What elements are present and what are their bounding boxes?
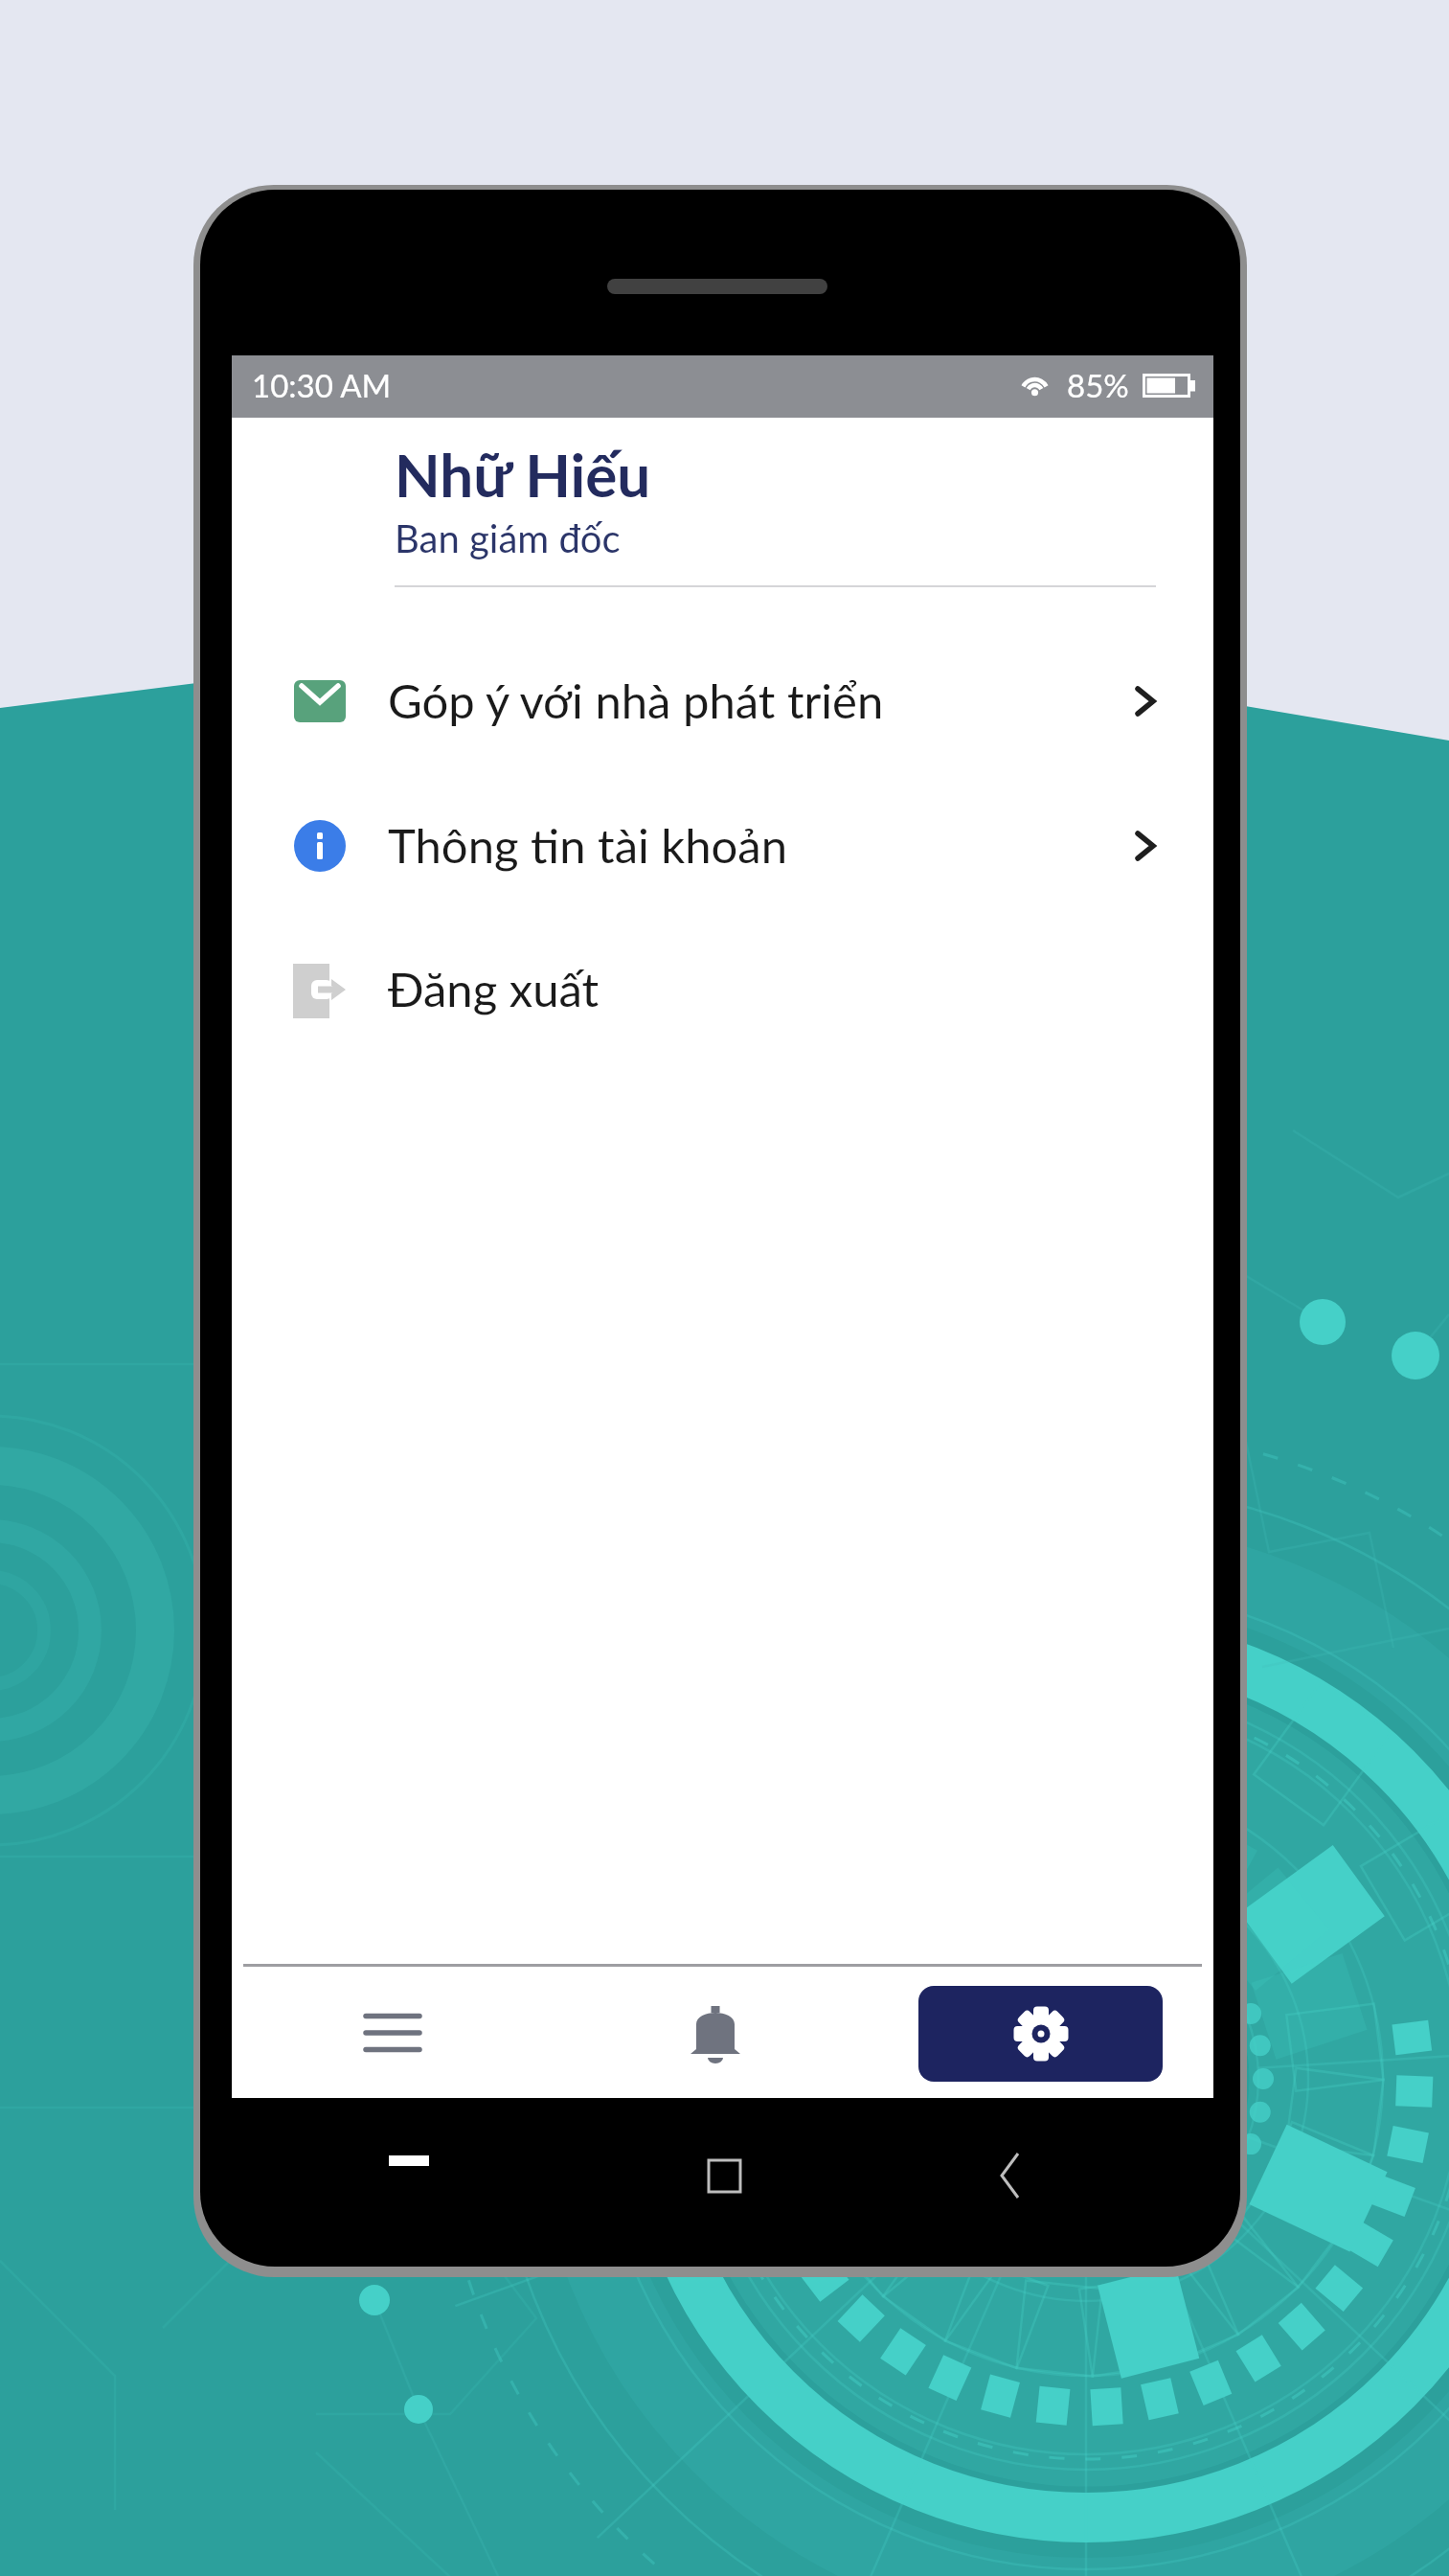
button[interactable]: Settings — [918, 1986, 1163, 2082]
button[interactable]: Góp ý với nhà phát triển — [232, 648, 1213, 755]
staticText: 10:30 AM — [252, 366, 392, 404]
button[interactable]: Thông tin tài khoản — [232, 792, 1213, 900]
staticText: Thông tin tài khoản — [388, 817, 788, 874]
button[interactable]: Menu — [333, 1967, 452, 2098]
staticText: Góp ý với nhà phát triển — [388, 672, 884, 729]
button[interactable]: Đăng xuất — [232, 936, 1213, 1043]
staticText: Nhữ Hiếu — [395, 439, 651, 510]
staticText: Đăng xuất — [388, 961, 600, 1017]
staticText: 85% — [1067, 366, 1129, 404]
staticText: Ban giám đốc — [395, 515, 621, 561]
button[interactable]: Notifications — [656, 1967, 775, 2098]
